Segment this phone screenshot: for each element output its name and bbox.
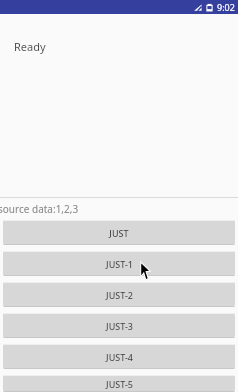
staticText: JUST-2	[106, 289, 133, 301]
button[interactable]: JUST-3	[3, 313, 235, 338]
staticText: 9:02	[217, 1, 235, 13]
staticText: JUST-1	[106, 258, 133, 270]
button[interactable]: JUST-2	[3, 282, 235, 307]
staticText: JUST-4	[106, 351, 133, 363]
button[interactable]: JUST-5	[3, 375, 235, 392]
other: Battery	[206, 3, 213, 12]
button[interactable]: JUST-4	[3, 344, 235, 369]
staticText: Ready	[14, 39, 46, 54]
button[interactable]: JUST-1	[3, 251, 235, 276]
staticText: JUST	[109, 227, 129, 239]
button[interactable]: JUST	[3, 220, 235, 245]
staticText: JUST-5	[106, 378, 133, 390]
staticText: source data:1,2,3	[0, 202, 79, 216]
other: Signal strength	[193, 3, 202, 12]
staticText: JUST-3	[106, 320, 133, 332]
